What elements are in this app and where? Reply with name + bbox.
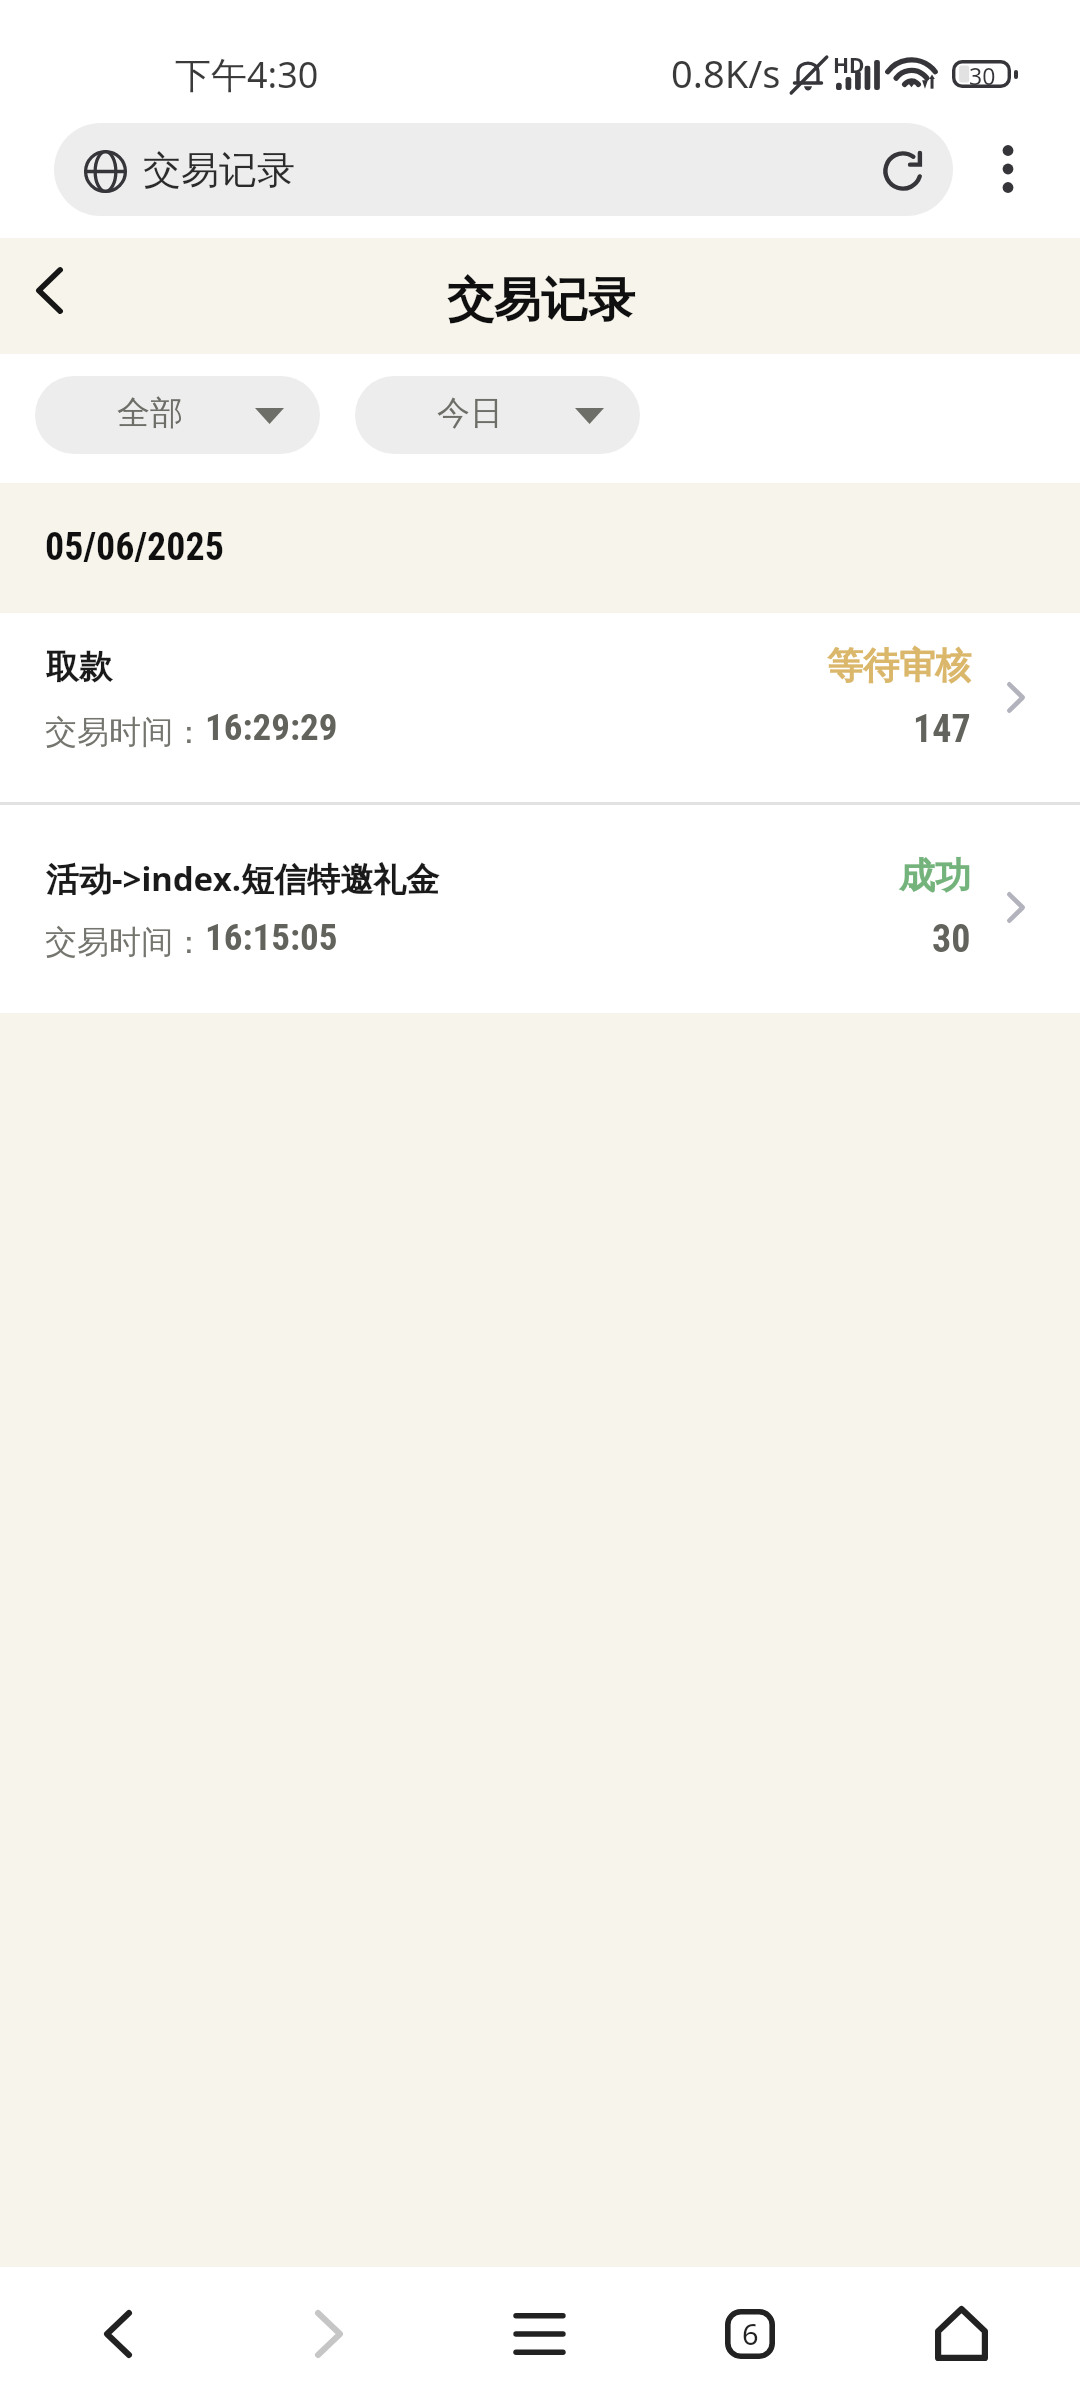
staticText: 交易时间：: [45, 922, 205, 962]
button[interactable]: Address bar: [54, 123, 953, 216]
button[interactable]: More options: [975, 136, 1041, 202]
staticText: 今日: [437, 392, 503, 434]
button[interactable]: 活动->index.短信特邀礼金: [0, 805, 1080, 1013]
staticText: 取款: [46, 646, 112, 688]
button[interactable]: 取款: [0, 613, 1080, 802]
button[interactable]: Back: [53, 2267, 183, 2400]
staticText: 全部: [117, 392, 183, 434]
staticText: 交易记录: [143, 146, 295, 194]
staticText: HD: [833, 51, 865, 80]
button[interactable]: Refresh: [868, 136, 938, 206]
staticText: 成功: [899, 853, 971, 898]
staticText: 147: [913, 707, 971, 752]
staticText: 交易记录: [447, 271, 635, 330]
staticText: 等待审核: [827, 643, 971, 688]
staticText: 30: [932, 917, 971, 962]
staticText: 05/06/2025: [45, 525, 224, 570]
button[interactable]: Menu: [474, 2267, 604, 2400]
button[interactable]: Home: [896, 2267, 1026, 2400]
staticText: 16:29:29: [205, 706, 338, 749]
staticText: 30: [969, 60, 996, 91]
button[interactable]: 全部: [35, 376, 320, 454]
staticText: 6: [742, 2314, 759, 2353]
staticText: 下午4:30: [175, 50, 319, 99]
staticText: 活动->index.短信特邀礼金: [46, 856, 439, 901]
button[interactable]: Tabs: [685, 2267, 815, 2400]
staticText: 0.8K/s: [671, 47, 781, 99]
staticText: 交易时间：: [45, 712, 205, 752]
staticText: 16:15:05: [205, 916, 338, 959]
button[interactable]: 今日: [355, 376, 640, 454]
button[interactable]: Back: [0, 238, 116, 354]
button[interactable]: Forward: [264, 2267, 394, 2400]
